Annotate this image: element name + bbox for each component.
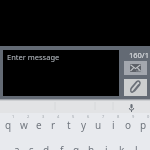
button[interactable]: g <box>68 138 83 150</box>
staticText: 7 <box>102 114 105 119</box>
staticText: u <box>95 118 102 132</box>
staticText: 9 <box>132 114 135 119</box>
button[interactable]: j <box>98 138 113 150</box>
button[interactable]: 1 <box>0 113 15 138</box>
button[interactable]: s <box>23 138 38 150</box>
staticText: h <box>88 143 95 150</box>
staticText: Enter message <box>7 52 60 62</box>
staticText: q <box>5 118 12 132</box>
staticText: d <box>43 143 50 150</box>
staticText: 2 <box>27 114 30 119</box>
staticText: t <box>67 118 71 132</box>
button[interactable]: f <box>53 138 68 150</box>
button[interactable]: 6 <box>75 113 90 138</box>
staticText: r <box>51 118 56 132</box>
button[interactable]: 9 <box>120 113 135 138</box>
button[interactable]: h <box>83 138 98 150</box>
button[interactable]: d <box>38 138 53 150</box>
button[interactable]: a <box>8 138 23 150</box>
button[interactable]: 8 <box>105 113 120 138</box>
button[interactable]: k <box>113 138 128 150</box>
button[interactable]: Attach file <box>124 79 147 96</box>
button[interactable]: Send message <box>124 61 147 75</box>
button[interactable]: 2 <box>15 113 30 138</box>
staticText: f <box>60 143 64 150</box>
staticText: s <box>29 143 34 150</box>
staticText: l <box>135 143 138 150</box>
staticText: y <box>81 118 87 132</box>
button[interactable]: 5 <box>60 113 75 138</box>
staticText: g <box>73 143 80 150</box>
staticText: o <box>125 118 132 132</box>
staticText: p <box>140 118 147 132</box>
staticText: k <box>119 143 125 150</box>
staticText: 4 <box>57 114 60 119</box>
staticText: 1 <box>12 114 15 119</box>
button[interactable]: 4 <box>45 113 60 138</box>
staticText: j <box>105 143 108 150</box>
staticText: 0 <box>147 114 150 119</box>
staticText: a <box>14 143 20 150</box>
button[interactable]: 0 <box>135 113 150 138</box>
staticText: e <box>36 118 42 132</box>
staticText: 3 <box>42 114 45 119</box>
staticText: w <box>20 118 28 132</box>
button[interactable]: l <box>128 138 143 150</box>
staticText: 8 <box>117 114 120 119</box>
button[interactable]: Enter message <box>3 50 119 96</box>
staticText: i <box>112 118 115 132</box>
staticText: 5 <box>72 114 75 119</box>
button[interactable]: 3 <box>30 113 45 138</box>
button[interactable]: 7 <box>90 113 105 138</box>
staticText: 6 <box>87 114 90 119</box>
staticText: 160/1 <box>129 50 149 60</box>
staticText: SMS <box>136 69 144 74</box>
